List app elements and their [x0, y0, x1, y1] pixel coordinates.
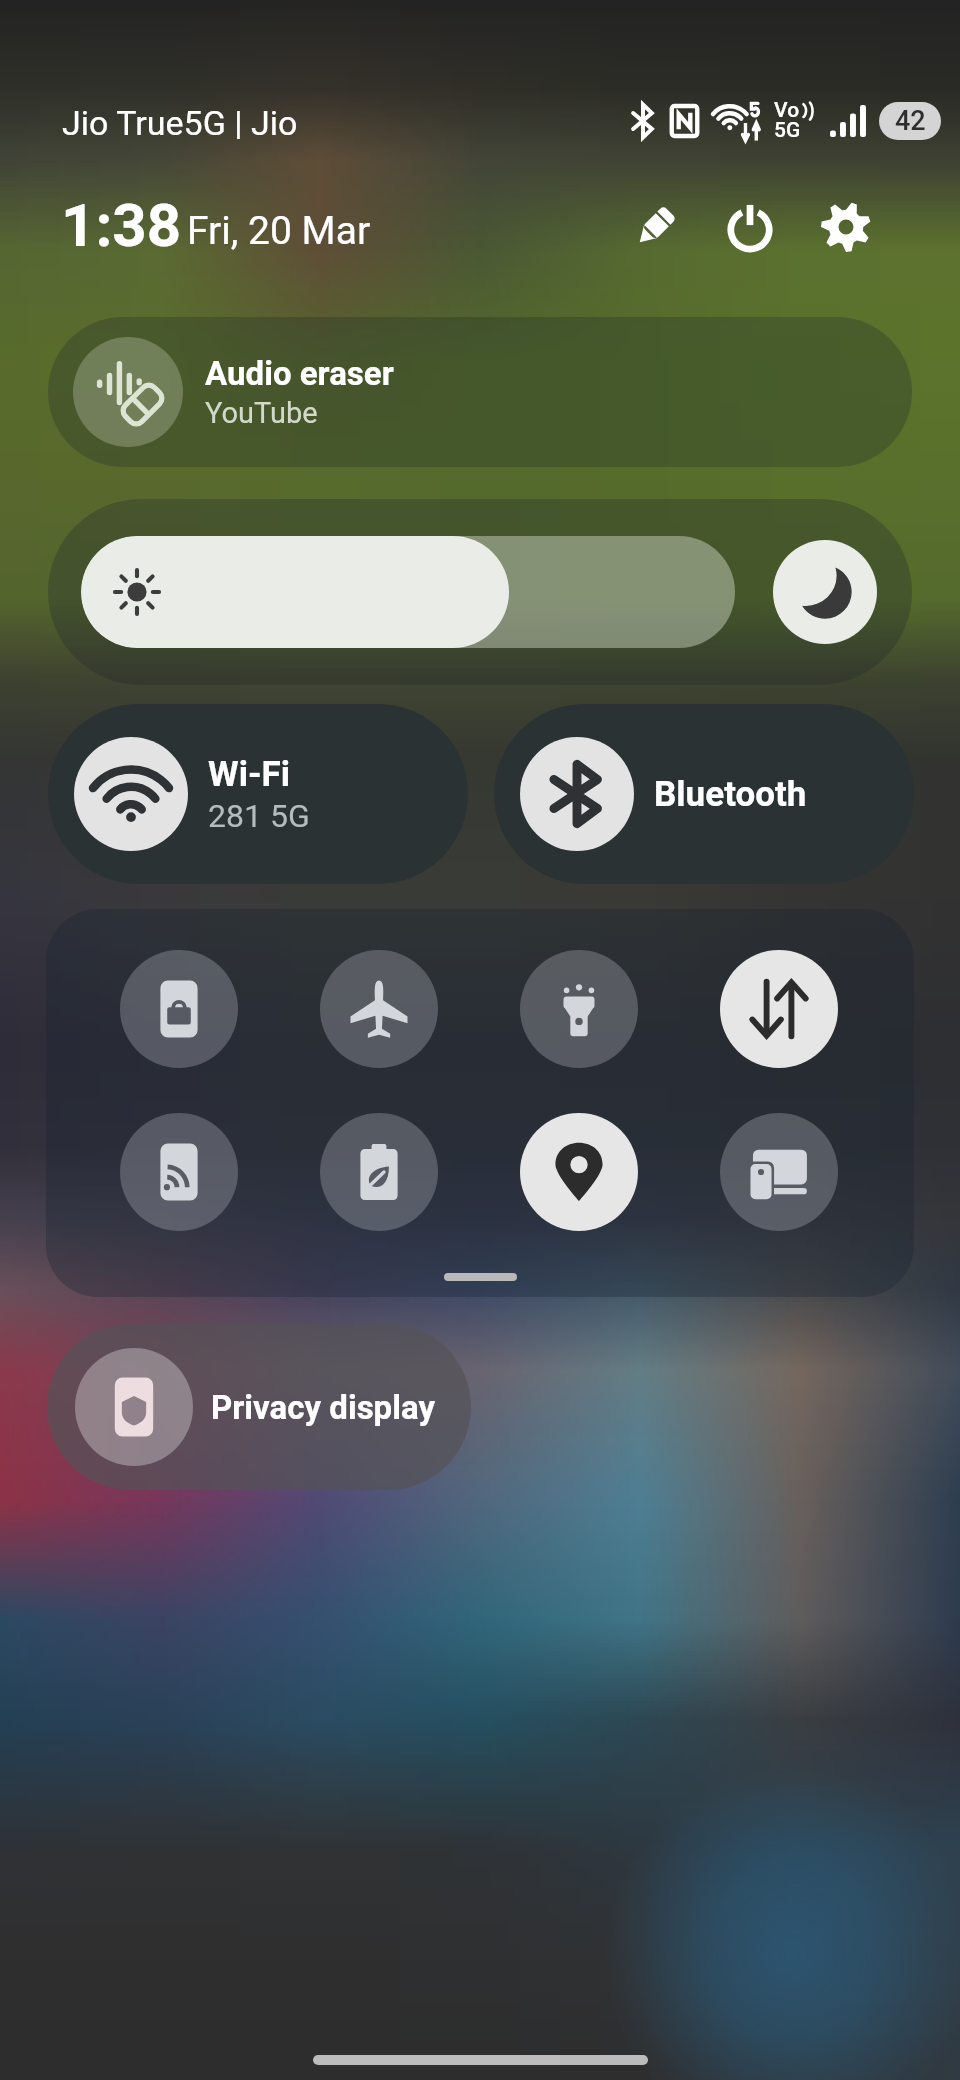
staticText: Bluetooth [654, 774, 807, 815]
staticText: 5G [774, 118, 801, 143]
button[interactable]: Flashlight [520, 950, 638, 1068]
staticText: YouTube [205, 396, 318, 430]
staticText: Audio eraser [205, 354, 394, 393]
staticText: 281 5G [208, 797, 310, 835]
staticText: Privacy display [211, 1388, 435, 1427]
button[interactable]: Lock screen [120, 950, 238, 1068]
staticText: Wi-Fi [208, 754, 290, 795]
button[interactable]: Mobile data [720, 950, 838, 1068]
staticText: Jio True5G | Jio [62, 103, 298, 143]
button[interactable]: Do not disturb [773, 540, 877, 644]
button[interactable]: Screen cast [120, 1113, 238, 1231]
staticText: 42 [895, 105, 926, 137]
staticText: 1:38 [61, 190, 182, 260]
button[interactable]: Edit [613, 185, 697, 269]
button[interactable]: Bluetooth [494, 704, 914, 884]
staticText: Fri, 20 Mar [187, 208, 371, 254]
button[interactable]: Audio eraser [48, 317, 912, 467]
button[interactable]: Wi-Fi [48, 704, 468, 884]
button[interactable] [81, 536, 735, 648]
button[interactable]: Airplane mode [320, 950, 438, 1068]
button[interactable]: Settings [804, 185, 888, 269]
button[interactable]: Location [520, 1113, 638, 1231]
button[interactable]: Privacy display [47, 1324, 471, 1490]
staticText: Vo [774, 98, 800, 123]
button[interactable]: Battery saver [320, 1113, 438, 1231]
button[interactable]: Nearby devices [720, 1113, 838, 1231]
button[interactable]: Power [708, 185, 792, 269]
